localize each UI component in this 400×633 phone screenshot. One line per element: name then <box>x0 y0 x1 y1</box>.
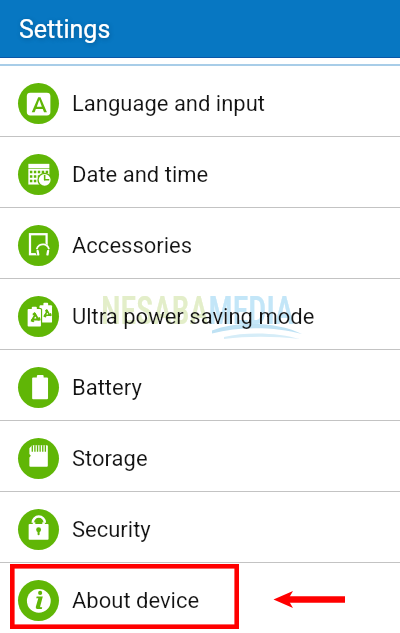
staticText: NESABA <box>101 288 209 334</box>
button[interactable]: Accessories <box>0 208 400 278</box>
button[interactable]: Language and input <box>0 66 400 136</box>
staticText: Storage <box>72 446 148 472</box>
staticText: Accessories <box>72 233 193 259</box>
button[interactable]: Battery <box>0 350 400 420</box>
button[interactable]: Storage <box>0 421 400 491</box>
staticText: Battery <box>72 375 142 401</box>
staticText: Date and time <box>72 162 209 188</box>
staticText: About device <box>72 588 200 614</box>
button[interactable]: Ultra power saving mode <box>0 279 400 349</box>
button[interactable]: About device <box>0 563 400 633</box>
button[interactable]: Date and time <box>0 137 400 207</box>
button[interactable]: Security <box>0 492 400 562</box>
staticText: Ultra power saving mode <box>72 304 315 330</box>
staticText: MEDIA <box>209 288 294 334</box>
staticText: Security <box>72 517 151 543</box>
staticText: Language and input <box>72 91 266 117</box>
staticText: Settings <box>19 15 111 44</box>
